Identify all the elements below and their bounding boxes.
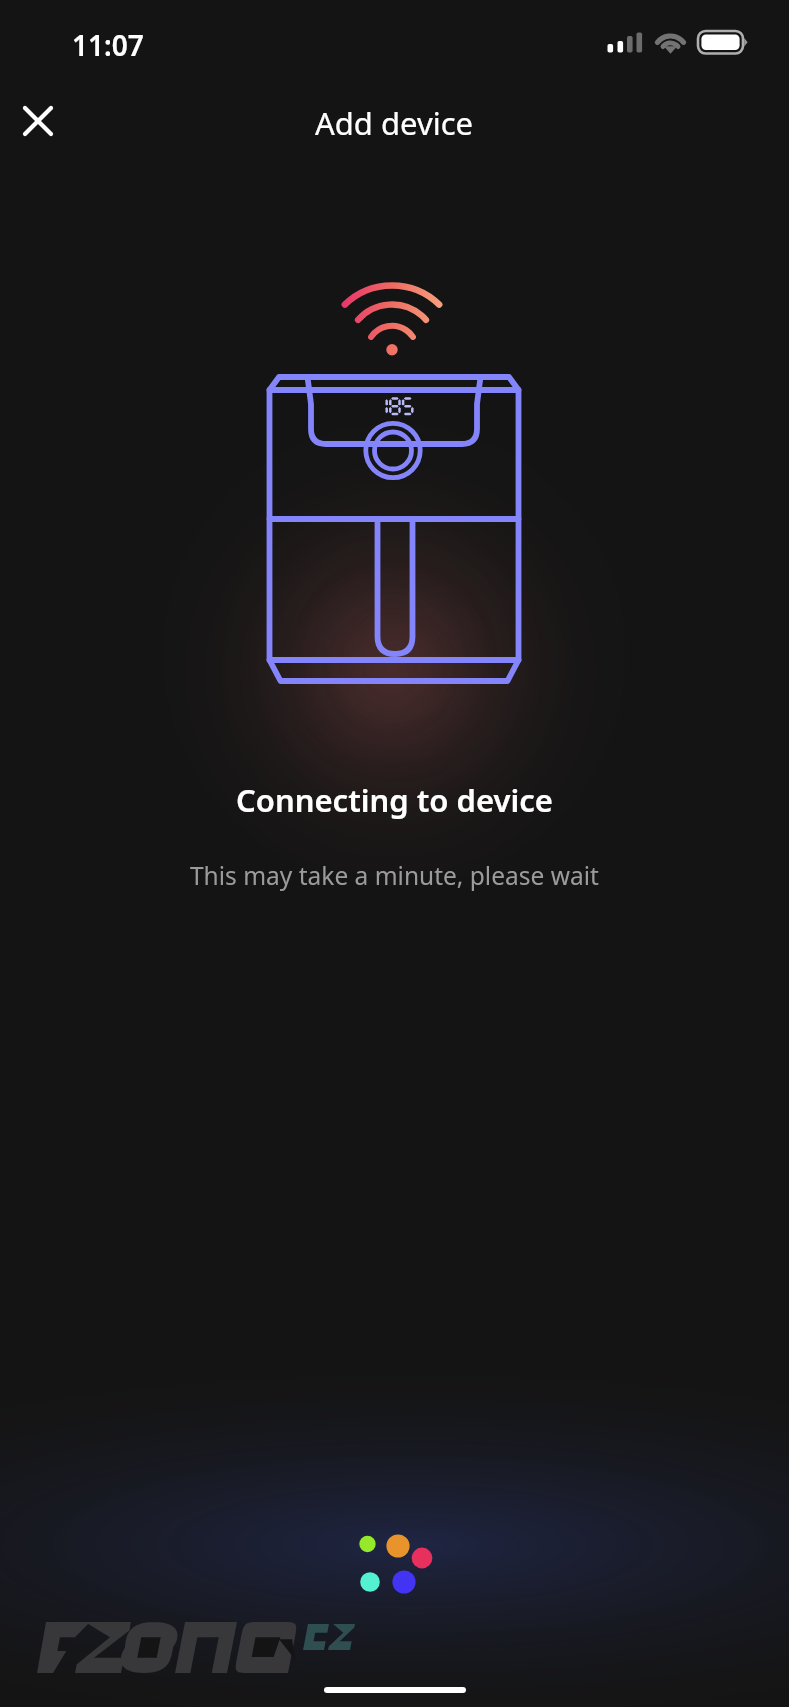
button[interactable]: Close [16, 99, 60, 143]
staticText: Connecting to device [236, 779, 553, 821]
staticText: Add device [315, 102, 474, 144]
staticText: 11:07 [72, 26, 144, 64]
staticText: This may take a minute, please wait [190, 859, 599, 892]
